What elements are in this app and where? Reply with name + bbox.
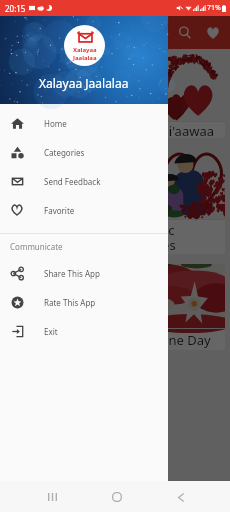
staticText: Jaalalaa fi Romantic Barreeffamootalees bbox=[54, 221, 176, 254]
staticText: Favorite bbox=[44, 205, 75, 216]
staticText: Ergaa Jaalalaa Dhugaa Mi'aawaa bbox=[17, 122, 214, 138]
button[interactable]: Home bbox=[0, 109, 168, 138]
staticText: 20:15 bbox=[5, 3, 26, 14]
staticText: 20:15 bbox=[5, 3, 26, 14]
staticText: Share This App bbox=[44, 268, 100, 279]
staticText: Xalayaa bbox=[73, 46, 97, 54]
staticText: Jaalalaa bbox=[73, 54, 97, 62]
button[interactable]: Share This App bbox=[0, 259, 168, 288]
button[interactable]: Rate This App bbox=[0, 288, 168, 317]
staticText: Ergaalee Jaalalaa Valentine Day bbox=[20, 331, 211, 349]
button[interactable]: Ergaa Jaalalaa Dhugaa Mi'aawaa bbox=[5, 52, 225, 138]
staticText: Categories bbox=[44, 147, 85, 158]
button[interactable]: Exit bbox=[0, 317, 168, 346]
staticText: Xalayaa Jaalalaa bbox=[39, 75, 129, 91]
button[interactable]: Jaalalaa fi Romantic Barreeffamootalees bbox=[5, 146, 225, 254]
button[interactable]: Search bbox=[171, 19, 199, 47]
button[interactable]: Recents bbox=[38, 483, 66, 511]
staticText: Rate This App bbox=[44, 297, 96, 308]
staticText: 71% bbox=[207, 3, 221, 13]
button[interactable]: Favorite bbox=[0, 196, 168, 225]
staticText: Send Feedback bbox=[44, 176, 101, 187]
staticText: Home bbox=[44, 118, 67, 129]
staticText: 71% bbox=[207, 3, 221, 13]
button[interactable]: Back bbox=[167, 483, 195, 511]
button[interactable]: Categories bbox=[0, 138, 168, 167]
staticText: Exit bbox=[44, 326, 58, 337]
button[interactable]: Send Feedback bbox=[0, 167, 168, 196]
staticText: Communicate bbox=[10, 241, 63, 252]
button[interactable]: Home bbox=[103, 483, 131, 511]
button[interactable]: Ergaalee Jaalalaa Valentine Day bbox=[5, 264, 225, 350]
button[interactable]: Favorites bbox=[199, 19, 227, 47]
